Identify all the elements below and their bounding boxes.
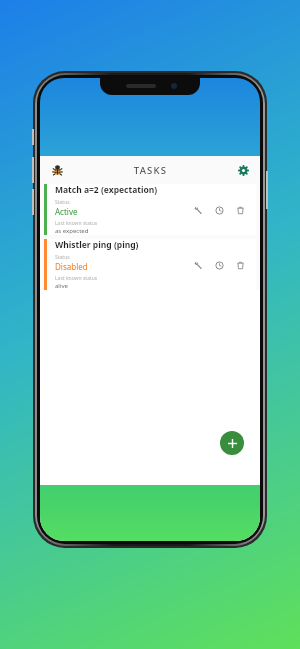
button[interactable]: Whistler ping (ping) xyxy=(44,239,256,290)
button[interactable]: History xyxy=(211,202,227,218)
button[interactable]: Delete xyxy=(232,257,248,273)
staticText: Last known status xyxy=(55,275,98,282)
staticText: Disabled xyxy=(55,261,88,272)
staticText: as expected xyxy=(55,227,89,235)
staticText: TASKS xyxy=(68,164,233,177)
button[interactable]: Delete xyxy=(232,202,248,218)
button[interactable]: Settings xyxy=(233,160,253,180)
staticText: Match a=2 (expectation) xyxy=(55,184,158,196)
button[interactable]: Match a=2 (expectation) xyxy=(44,184,256,235)
button[interactable]: Configure xyxy=(190,202,206,218)
staticText: Whistler ping (ping) xyxy=(55,239,139,251)
staticText: alive xyxy=(55,282,68,290)
button[interactable]: Add task xyxy=(220,431,244,455)
staticText: Status xyxy=(55,199,70,206)
button[interactable]: App logo xyxy=(46,159,68,181)
staticText: Active xyxy=(55,206,78,217)
button[interactable]: History xyxy=(211,257,227,273)
button[interactable]: Configure xyxy=(190,257,206,273)
staticText: Status xyxy=(55,254,70,261)
staticText: Last known status xyxy=(55,220,98,227)
